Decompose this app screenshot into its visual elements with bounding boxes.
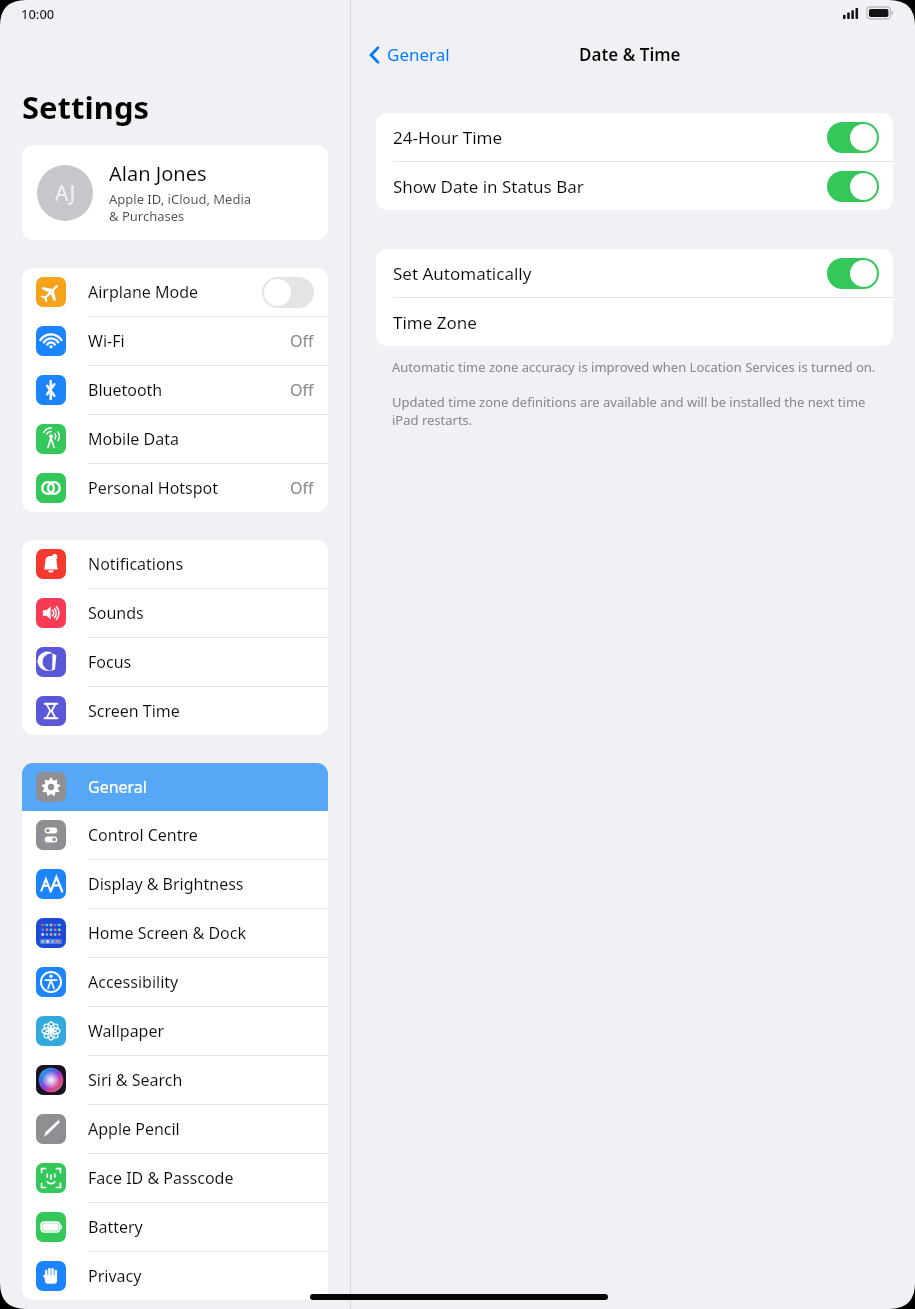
button[interactable]: Display & Brightness	[22, 860, 328, 908]
staticText: Off	[290, 379, 314, 401]
staticText: General	[387, 43, 450, 66]
staticText: Display & Brightness	[88, 873, 244, 895]
staticText: AJ	[55, 179, 76, 208]
button[interactable]: Airplane Mode	[22, 268, 328, 316]
button[interactable]: Mobile Data	[22, 415, 328, 463]
staticText: Mobile Data	[88, 428, 179, 450]
staticText: General	[88, 776, 147, 798]
button[interactable]: Wi-Fi	[22, 317, 328, 365]
button[interactable]: Wallpaper	[22, 1007, 328, 1055]
staticText: Airplane Mode	[88, 281, 199, 303]
button[interactable]: General	[351, 39, 468, 70]
button[interactable]: Bluetooth	[22, 366, 328, 414]
staticText: Updated time zone definitions are availa…	[392, 393, 893, 429]
button[interactable]: Home Screen & Dock	[22, 909, 328, 957]
staticText: Bluetooth	[88, 379, 163, 401]
staticText: 24-Hour Time	[393, 126, 503, 149]
button[interactable]: AJ	[22, 145, 328, 240]
staticText: Notifications	[88, 553, 184, 575]
button[interactable]: Sounds	[22, 589, 328, 637]
staticText: Show Date in Status Bar	[393, 175, 584, 198]
staticText: Face ID & Passcode	[88, 1167, 234, 1189]
staticText: Apple Pencil	[88, 1118, 180, 1140]
staticText: Set Automatically	[393, 262, 532, 285]
button[interactable]: Screen Time	[22, 687, 328, 735]
staticText: Alan Jones	[109, 160, 207, 187]
staticText: 10:00	[21, 5, 55, 23]
staticText: Control Centre	[88, 824, 198, 846]
staticText: Apple ID, iCloud, Media & Purchases	[109, 190, 252, 225]
button[interactable]: 24-Hour Time	[376, 113, 893, 161]
button[interactable]: Accessibility	[22, 958, 328, 1006]
staticText: Date & Time	[579, 43, 681, 66]
button[interactable]: Apple Pencil	[22, 1105, 328, 1153]
button[interactable]: Switch off	[262, 277, 314, 308]
staticText: Battery	[88, 1216, 143, 1238]
staticText: Accessibility	[88, 971, 179, 993]
button[interactable]: Show Date in Status Bar	[376, 162, 893, 210]
button[interactable]: Battery	[22, 1203, 328, 1251]
button[interactable]: Set Automatically	[376, 249, 893, 297]
staticText: Privacy	[88, 1265, 142, 1287]
button[interactable]: Time Zone	[376, 298, 893, 346]
button[interactable]: Control Centre	[22, 811, 328, 859]
button[interactable]: Face ID & Passcode	[22, 1154, 328, 1202]
button[interactable]: Switch on	[827, 122, 879, 153]
staticText: Off	[290, 330, 314, 352]
staticText: Sounds	[88, 602, 144, 624]
staticText: Wi-Fi	[88, 330, 125, 352]
staticText: Focus	[88, 651, 132, 673]
staticText: Settings	[22, 86, 150, 128]
staticText: Wallpaper	[88, 1020, 165, 1042]
button[interactable]: Privacy	[22, 1252, 328, 1300]
button[interactable]: Personal Hotspot	[22, 464, 328, 512]
staticText: Off	[290, 477, 314, 499]
staticText: Home Screen & Dock	[88, 922, 246, 944]
button[interactable]: Notifications	[22, 540, 328, 588]
staticText: Siri & Search	[88, 1069, 183, 1091]
staticText: Personal Hotspot	[88, 477, 219, 499]
button[interactable]: Switch on	[827, 171, 879, 202]
button[interactable]: Siri & Search	[22, 1056, 328, 1104]
staticText: Automatic time zone accuracy is improved…	[392, 358, 876, 376]
button[interactable]: General	[22, 763, 328, 811]
staticText: Screen Time	[88, 700, 180, 722]
button[interactable]: Switch on	[827, 258, 879, 289]
button[interactable]: Focus	[22, 638, 328, 686]
staticText: Time Zone	[393, 311, 477, 334]
